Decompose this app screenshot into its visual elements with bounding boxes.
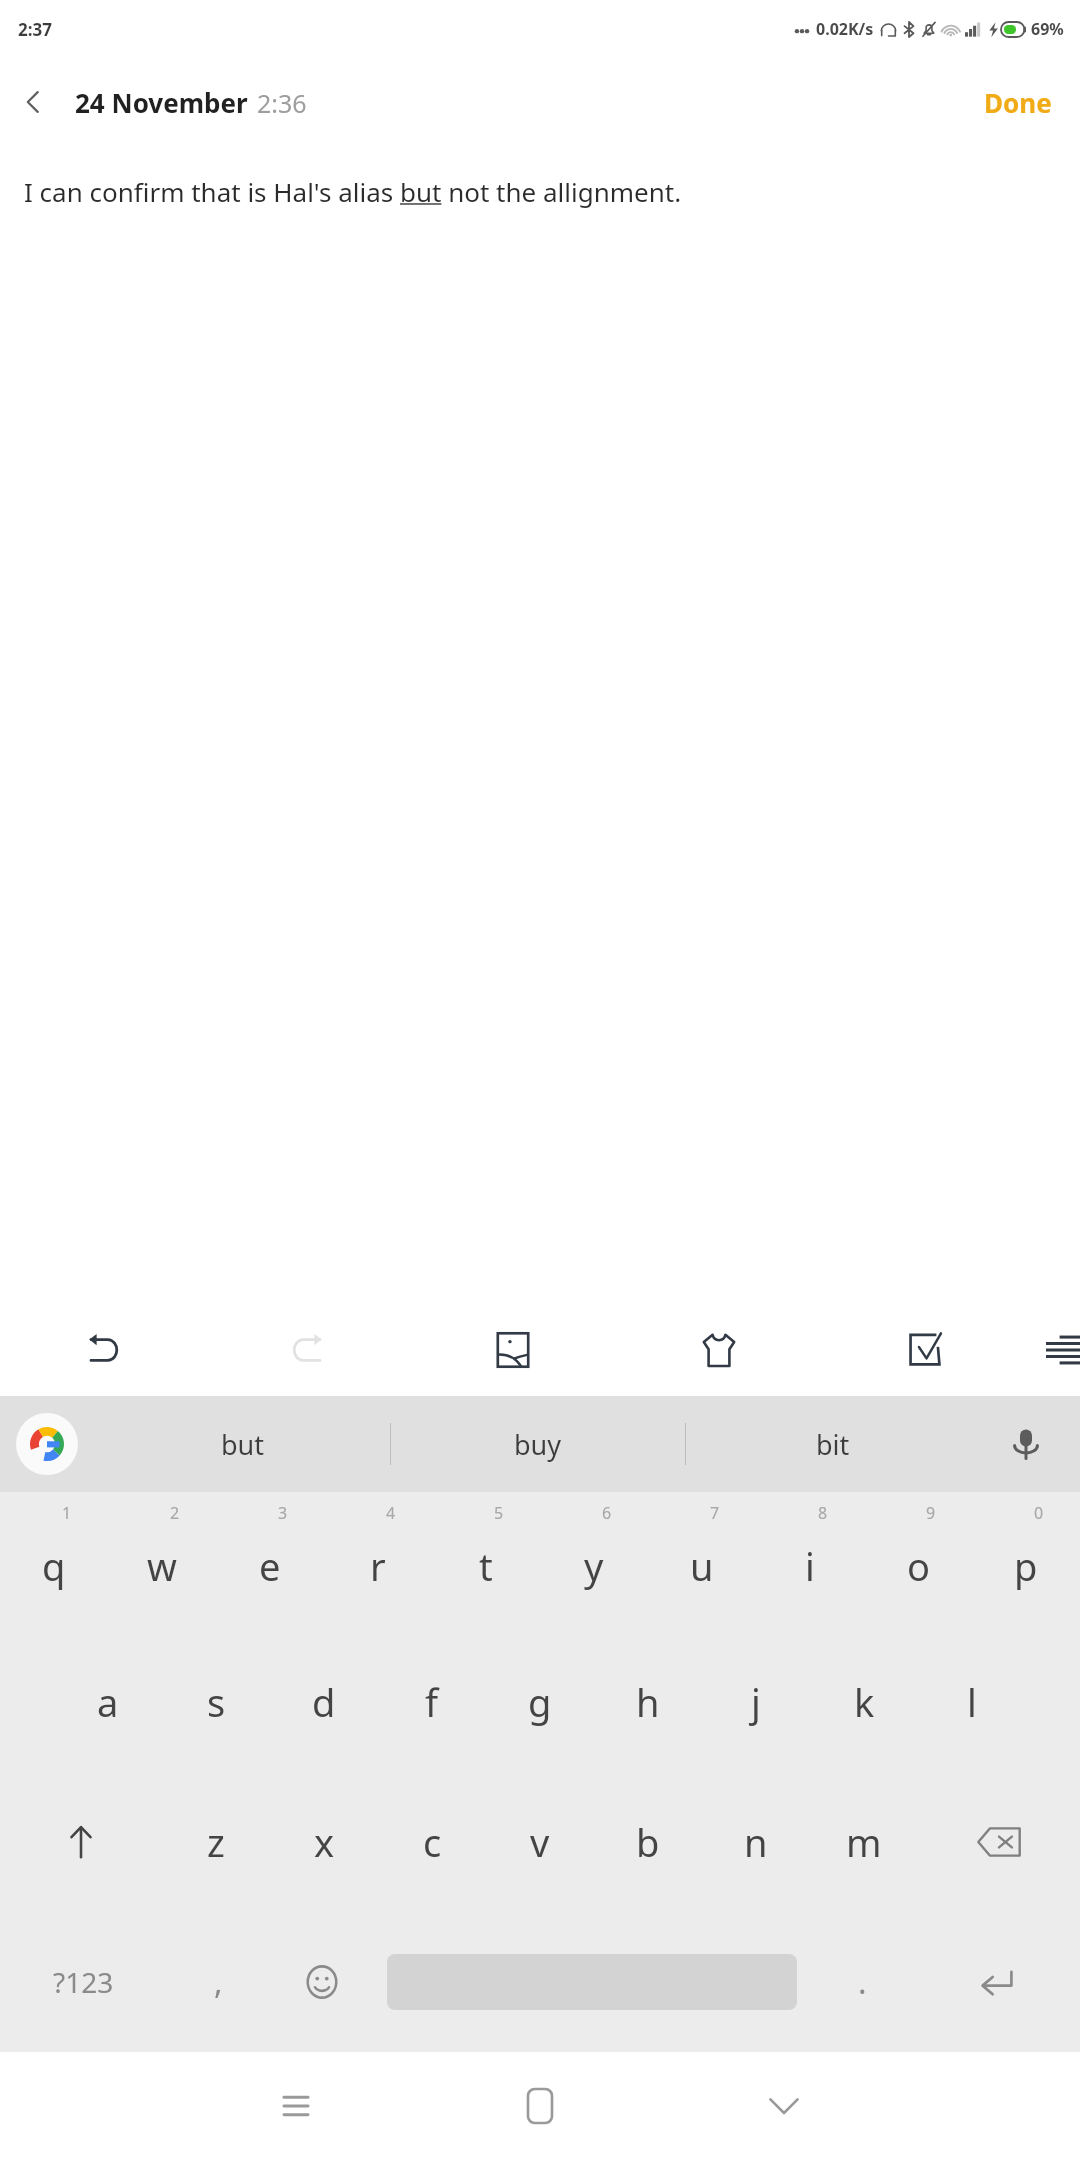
staticText: o [907,1540,930,1592]
staticText: ?123 [53,1963,114,2001]
staticText: q [42,1540,66,1592]
button[interactable]: Voice input [998,1416,1054,1472]
staticText: but [221,1426,265,1463]
staticText: x [314,1816,335,1868]
button[interactable]: m [810,1772,918,1912]
staticText: b [636,1816,660,1868]
staticText: 2:36 [257,86,307,120]
button[interactable]: Google [16,1413,78,1475]
button[interactable]: Done [966,75,1070,130]
button[interactable]: b [594,1772,702,1912]
button[interactable]: Hide keyboard [662,2052,906,2160]
staticText: t [479,1540,493,1592]
staticText: y [584,1540,604,1592]
button[interactable]: 8 [756,1492,864,1632]
button[interactable]: but [95,1396,390,1492]
button[interactable]: 7 [648,1492,756,1632]
staticText: 2:37 [18,18,52,41]
button[interactable]: 1 [0,1492,108,1632]
button[interactable]: buy [391,1396,685,1492]
button[interactable]: Recents [174,2052,418,2160]
staticText: c [423,1816,442,1868]
staticText: 7 [710,1502,720,1524]
button[interactable]: a [54,1632,162,1772]
button[interactable]: 4 [324,1492,432,1632]
staticText: u [690,1540,714,1592]
staticText: f [425,1676,439,1728]
button[interactable] [374,1912,810,2052]
button[interactable]: Text format [1028,1304,1080,1396]
staticText: m [846,1816,882,1868]
staticText: 0 [1034,1502,1044,1524]
button[interactable]: Back [0,69,66,135]
button[interactable]: Home [418,2052,662,2160]
staticText: p [1014,1540,1038,1592]
button[interactable]: Undo [0,1304,205,1396]
staticText: v [530,1816,550,1868]
staticText: 0.02K/s [816,18,874,40]
staticText: s [207,1676,226,1728]
button[interactable]: Shift [0,1772,162,1912]
staticText: 6 [602,1502,612,1524]
button[interactable]: f [378,1632,486,1772]
staticText: l [967,1676,977,1728]
button[interactable]: z [162,1772,270,1912]
button[interactable]: x [270,1772,378,1912]
button[interactable]: 9 [864,1492,972,1632]
staticText: 2 [170,1502,180,1524]
staticText: k [854,1676,875,1728]
button[interactable]: Checklist [822,1304,1028,1396]
button[interactable]: g [486,1632,594,1772]
staticText: a [97,1676,119,1728]
button[interactable]: 6 [540,1492,648,1632]
staticText: i [805,1540,815,1592]
button[interactable]: 0 [972,1492,1080,1632]
button[interactable]: , [166,1912,270,2052]
staticText: w [147,1540,177,1592]
button[interactable]: 2 [108,1492,216,1632]
staticText: d [312,1676,336,1728]
staticText: r [370,1540,386,1592]
button[interactable]: j [702,1632,810,1772]
staticText: h [636,1676,660,1728]
staticText: 4 [386,1502,396,1524]
button[interactable]: Enter [914,1912,1080,2052]
staticText: buy [514,1426,562,1463]
button[interactable]: Style [616,1304,822,1396]
button[interactable]: v [486,1772,594,1912]
staticText: , [214,1960,223,2004]
button[interactable]: c [378,1772,486,1912]
staticText: 5 [494,1502,504,1524]
button[interactable]: l [918,1632,1026,1772]
staticText: j [751,1676,761,1728]
button[interactable]: 5 [432,1492,540,1632]
staticText: n [744,1816,768,1868]
staticText: 3 [278,1502,288,1524]
button[interactable]: Emoji [270,1912,374,2052]
staticText: . [858,1960,867,2004]
button[interactable]: ?123 [0,1912,166,2052]
staticText: 24 November [75,85,248,120]
button[interactable]: d [270,1632,378,1772]
button[interactable]: h [594,1632,702,1772]
staticText: g [528,1676,552,1728]
staticText: e [259,1540,281,1592]
button[interactable]: n [702,1772,810,1912]
staticText: Done [984,85,1052,120]
button[interactable]: 3 [216,1492,324,1632]
button[interactable]: Backspace [918,1772,1080,1912]
button[interactable]: k [810,1632,918,1772]
button[interactable]: bit [686,1396,980,1492]
staticText: z [207,1816,225,1868]
button[interactable]: s [162,1632,270,1772]
button[interactable]: Insert image [410,1304,616,1396]
staticText: 9 [926,1502,936,1524]
staticText: 8 [818,1502,828,1524]
staticText: bit [816,1426,850,1463]
staticText: 69% [1031,18,1064,40]
staticText: I can confirm that is Hal's alias but no… [24,174,682,209]
staticText: 1 [62,1502,72,1524]
